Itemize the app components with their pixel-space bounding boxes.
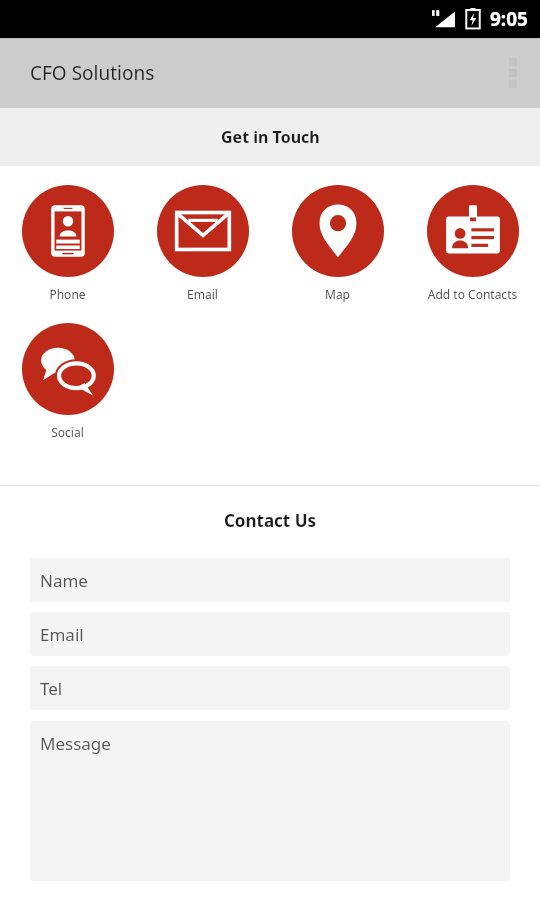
staticText: Phone [0, 286, 135, 302]
button[interactable]: Email [135, 185, 270, 302]
staticText: 9:05 [490, 6, 528, 32]
staticText: Tel [40, 677, 63, 700]
button[interactable]: Message [30, 721, 510, 881]
button[interactable]: Map [270, 185, 405, 302]
staticText: Contact Us [0, 509, 540, 532]
staticText: Social [0, 424, 135, 440]
button[interactable]: Tel [30, 666, 510, 710]
button[interactable]: Add to Contacts [405, 185, 540, 302]
button[interactable]: Social [0, 323, 135, 440]
button[interactable]: Name [30, 558, 510, 602]
staticText: Get in Touch [221, 126, 320, 148]
staticText: Name [40, 569, 88, 592]
staticText: Add to Contacts [405, 286, 540, 302]
button[interactable]: Email [30, 612, 510, 656]
button[interactable]: Phone [0, 185, 135, 302]
staticText: Email [135, 286, 270, 302]
staticText: Map [270, 286, 405, 302]
staticText: Email [40, 623, 84, 646]
staticText: Message [40, 732, 111, 755]
staticText: CFO Solutions [30, 60, 155, 86]
